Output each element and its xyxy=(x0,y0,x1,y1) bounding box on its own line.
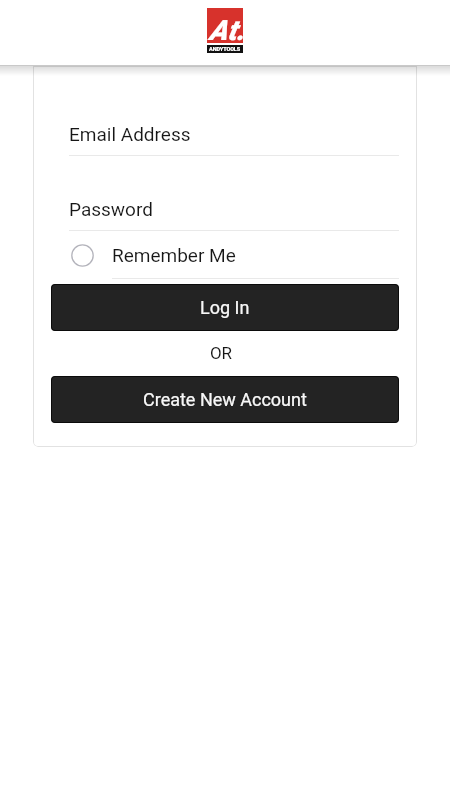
button[interactable]: Log In xyxy=(51,284,399,331)
staticText: Remember Me xyxy=(112,244,236,266)
staticText: Password xyxy=(69,198,153,220)
staticText: Create New Account xyxy=(143,389,307,410)
staticText: ANDYTOOLS xyxy=(209,46,241,52)
staticText: OR xyxy=(47,343,395,363)
button[interactable]: Remember Me xyxy=(71,244,399,279)
staticText: At. xyxy=(209,14,245,47)
button[interactable]: Password xyxy=(69,198,399,231)
staticText: Email Address xyxy=(69,123,191,145)
button[interactable]: AndyTools home xyxy=(207,8,243,53)
button[interactable]: Email Address xyxy=(69,123,399,156)
button[interactable]: Create New Account xyxy=(51,376,399,423)
staticText: Log In xyxy=(200,297,250,318)
